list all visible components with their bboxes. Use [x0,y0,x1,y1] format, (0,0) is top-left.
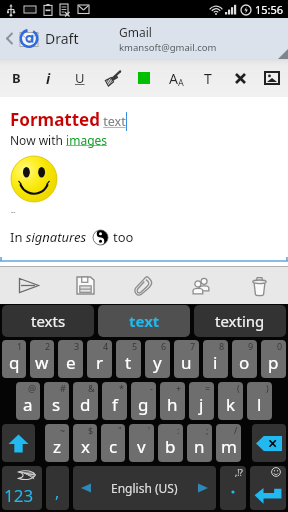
staticText: p [268,351,279,374]
staticText: c [109,435,118,458]
button[interactable]: f [102,382,127,420]
staticText: / [234,424,238,436]
button[interactable]: Clear formatting [224,59,256,97]
staticText: t [125,351,132,374]
button[interactable]: q [2,340,26,378]
button[interactable]: Underline [64,59,96,97]
button[interactable]: l [247,382,272,420]
button[interactable]: Backspace [252,424,286,462]
button[interactable]: e [58,340,83,378]
button[interactable]: m [216,424,241,462]
button[interactable]: o [232,340,257,378]
button[interactable]: r [87,340,112,378]
staticText: too [113,228,134,246]
staticText: d [80,393,91,416]
staticText: q [9,351,20,374]
button[interactable]: Bold [0,59,32,97]
staticText: l [257,393,262,416]
button[interactable]: t [116,340,141,378]
staticText: u [181,351,192,374]
button[interactable]: g [131,382,156,420]
staticText: & [88,382,95,394]
button[interactable]: Delete [230,267,288,304]
button[interactable]: s [44,382,69,420]
button[interactable]: Back [0,18,288,59]
button[interactable]: Text color [128,59,160,97]
button[interactable]: j [189,382,214,420]
button[interactable]: Space [73,466,216,510]
button[interactable]: Enter [250,466,286,510]
staticText: # [60,382,66,394]
button[interactable]: v [129,424,154,462]
staticText: texts [31,311,66,331]
staticText: 2 [45,340,51,352]
button[interactable]: Highlight [96,59,128,97]
button[interactable]: k [218,382,243,420]
staticText: 1 [17,340,23,352]
button[interactable]: c [101,424,125,462]
staticText: f [112,393,118,416]
staticText: = [205,382,211,394]
staticText: n [194,435,205,458]
button[interactable]: d [73,382,98,420]
staticText: English (US) [111,480,178,496]
button[interactable]: , [46,466,69,510]
button[interactable]: Period [220,466,246,510]
staticText: ; [206,424,209,436]
button[interactable]: text [98,305,190,337]
button[interactable]: Send [0,267,57,304]
button[interactable]: Typeface [192,59,224,97]
staticText: s [52,393,61,416]
staticText: texting [215,311,265,331]
staticText: 9 [248,340,254,352]
button[interactable]: Italic [32,59,64,97]
staticText: x [81,435,90,458]
button[interactable]: p [261,340,286,378]
staticText: y [153,351,162,374]
staticText: i [46,69,51,88]
button[interactable]: b [158,424,183,462]
button[interactable]: texts [2,305,94,337]
button[interactable]: Font size [160,59,192,97]
staticText: -- [11,207,16,217]
button[interactable]: y [145,340,170,378]
staticText: b [165,435,176,458]
staticText: i [213,351,218,374]
staticText: r [96,351,104,374]
staticText: 15:56 [255,2,284,17]
button[interactable]: Symbols [2,466,42,510]
button[interactable]: Contacts [172,267,230,304]
button[interactable]: n [187,424,212,462]
button[interactable]: Insert image [256,59,288,97]
staticText: Now with images [10,132,108,148]
staticText: h [167,393,178,416]
staticText: A [178,76,184,88]
staticText: 6 [161,340,167,352]
staticText: Formatted text [10,108,126,131]
staticText: m [221,435,237,458]
staticText: 4 [103,340,109,352]
button[interactable]: a [16,382,40,420]
staticText: : [177,424,180,436]
staticText: 3 [74,340,80,352]
staticText: + [176,382,182,394]
button[interactable]: texting [194,305,286,337]
staticText: 5 [132,340,138,352]
button[interactable]: x [73,424,97,462]
staticText: - [150,382,153,394]
staticText: z [53,435,61,458]
staticText: o [239,351,250,374]
other: Back [6,32,13,45]
button[interactable]: i [203,340,228,378]
button[interactable]: Shift [2,424,35,462]
staticText: A [169,69,178,88]
button[interactable]: u [174,340,199,378]
staticText: 0 [277,340,283,352]
staticText: 123 [4,484,34,507]
button[interactable]: w [30,340,54,378]
button[interactable]: h [160,382,185,420]
button[interactable]: Save [57,267,114,304]
button[interactable]: z [45,424,69,462]
staticText: B [12,69,21,87]
button[interactable]: Attach [114,267,172,304]
